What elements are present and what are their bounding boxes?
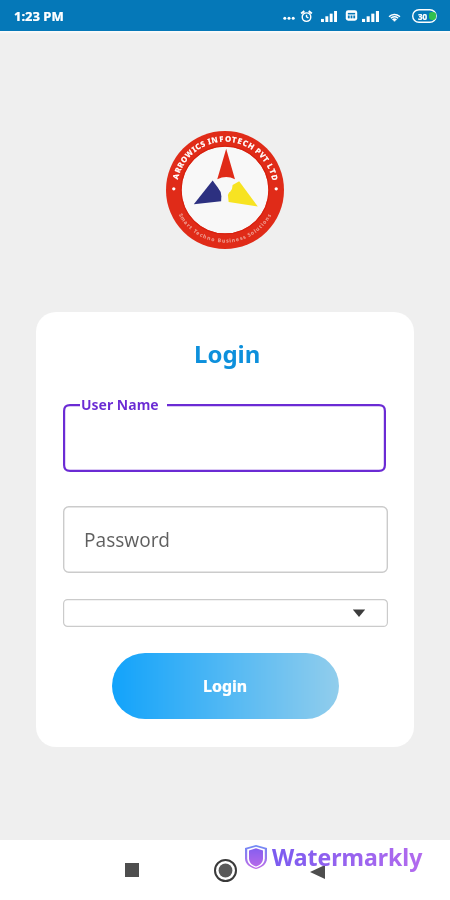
staticText: Login	[194, 337, 261, 370]
button[interactable]: Recent apps	[112, 850, 152, 890]
button[interactable]: Login	[112, 653, 339, 719]
button[interactable]: Select option	[63, 599, 388, 627]
button[interactable]: Home	[205, 850, 245, 890]
staticText: Watermarkly	[272, 841, 423, 872]
staticText: Login	[203, 675, 248, 697]
staticText: Password	[84, 527, 170, 553]
staticText: 1:23 PM	[14, 7, 64, 25]
staticText: 30	[418, 11, 428, 22]
staticText: User Name	[81, 395, 159, 414]
button[interactable]: User Name input	[63, 404, 386, 472]
button[interactable]: Back	[297, 852, 337, 892]
button[interactable]: Password input	[63, 506, 388, 573]
